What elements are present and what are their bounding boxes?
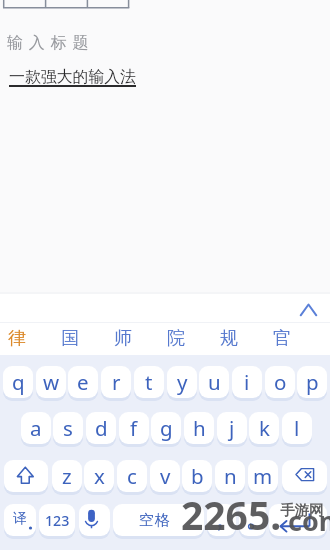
staticText: com <box>288 502 330 539</box>
staticText: 律 <box>8 327 26 350</box>
staticText: y <box>177 368 188 396</box>
staticText: o <box>274 368 287 396</box>
staticText: 123 <box>45 511 70 530</box>
staticText: 译 <box>13 509 28 527</box>
staticText: v <box>160 462 171 490</box>
staticText: d <box>95 414 108 442</box>
staticText: 一款强大的输入法 <box>9 67 137 86</box>
staticText: x <box>94 462 105 490</box>
staticText: 国 <box>61 327 79 350</box>
staticText: q <box>12 368 25 396</box>
staticText: j <box>229 414 235 442</box>
staticText: t <box>145 368 153 396</box>
staticText: h <box>193 414 206 442</box>
staticText: a <box>30 414 42 442</box>
staticText: s <box>63 414 73 442</box>
staticText: r <box>112 368 121 396</box>
staticText: f <box>130 414 138 442</box>
staticText: p <box>306 368 319 396</box>
staticText: 官 <box>273 327 291 350</box>
staticText: 空格 <box>139 511 171 530</box>
staticText: b <box>191 462 204 490</box>
staticText: k <box>259 414 270 442</box>
staticText: 院 <box>167 327 185 350</box>
staticText: n <box>224 462 237 490</box>
staticText: e <box>77 368 89 396</box>
staticText: z <box>62 462 72 490</box>
staticText: 输入标题 <box>7 33 95 53</box>
staticText: w <box>43 368 60 396</box>
staticText: 2265. <box>181 488 282 541</box>
staticText: m <box>253 462 273 490</box>
staticText: c <box>127 462 137 490</box>
staticText: 师 <box>114 327 132 350</box>
staticText: 手游网 <box>280 501 324 519</box>
staticText: 规 <box>220 327 238 350</box>
staticText: g <box>160 414 173 442</box>
staticText: i <box>244 368 250 396</box>
staticText: l <box>294 414 300 442</box>
staticText: u <box>208 368 221 396</box>
